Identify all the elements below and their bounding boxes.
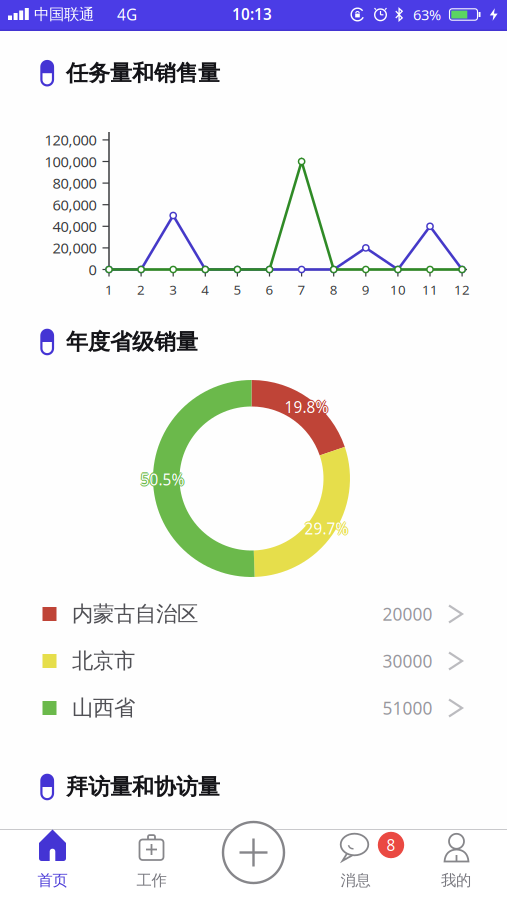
staticText: 11 (422, 280, 438, 299)
staticText: 12 (454, 280, 470, 299)
staticText: 8 (386, 835, 395, 855)
staticText: 19.8% (284, 397, 328, 417)
staticText: 29.7% (304, 517, 348, 538)
staticText: 19.8% (284, 395, 328, 416)
staticText: 4 (201, 280, 209, 299)
staticText: 2 (137, 280, 145, 299)
staticText: 50.5% (140, 470, 184, 491)
staticText: 29.7% (304, 519, 348, 540)
staticText: 50.5% (142, 469, 186, 490)
staticText: 29.7% (304, 518, 348, 539)
staticText: 5 (233, 280, 241, 299)
staticText: 工作 (136, 871, 166, 890)
staticText: 首页 (37, 871, 67, 890)
staticText: 120,000 (44, 130, 96, 150)
staticText: 60,000 (52, 195, 96, 215)
staticText: 拜访量和协访量 (66, 773, 220, 801)
staticText: 63% (413, 4, 441, 24)
staticText: 任务量和销售量 (66, 59, 220, 87)
staticText: 内蒙古自治区 (72, 601, 198, 627)
staticText: 50.5% (140, 469, 184, 490)
staticText: 19.8% (284, 398, 328, 419)
staticText: 29.7% (303, 518, 347, 539)
staticText: 40,000 (52, 216, 96, 236)
staticText: 20,000 (52, 238, 96, 258)
staticText: 8 (330, 280, 338, 299)
staticText: 19.8% (286, 397, 330, 417)
staticText: 50.5% (140, 468, 184, 489)
staticText: 7 (298, 280, 306, 299)
staticText: 19.8% (283, 397, 327, 417)
staticText: 1 (105, 280, 113, 299)
staticText: 50.5% (139, 469, 183, 490)
staticText: 我的 (441, 871, 471, 890)
staticText: 年度省级销量 (66, 328, 198, 356)
staticText: 消息 (340, 871, 370, 890)
staticText: 北京市 (72, 648, 135, 674)
staticText: 10:13 (232, 4, 272, 24)
staticText: 29.7% (306, 518, 350, 539)
staticText: 9 (362, 280, 370, 299)
staticText: 中国联通 (34, 5, 94, 24)
staticText: 6 (265, 280, 273, 299)
staticText: 0 (88, 259, 96, 279)
staticText: 10 (390, 280, 406, 299)
staticText: 山西省 (72, 695, 135, 721)
staticText: 20000 (382, 602, 432, 626)
staticText: 3 (169, 280, 177, 299)
staticText: 80,000 (52, 173, 96, 193)
staticText: 4G (117, 4, 137, 25)
staticText: 30000 (382, 649, 432, 673)
staticText: 100,000 (44, 151, 96, 171)
staticText: 51000 (382, 696, 432, 720)
